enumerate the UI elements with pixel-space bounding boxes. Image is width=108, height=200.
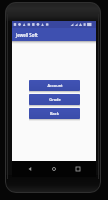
staticText: Back [50,111,59,116]
staticText: Jewell Soft [16,32,38,38]
button[interactable]: Grade [29,94,80,105]
button[interactable]: Home [48,163,60,175]
button[interactable]: Recent apps [72,163,84,175]
staticText: Grade [49,97,61,102]
button[interactable]: Back [29,108,80,119]
button[interactable]: Back [24,163,36,175]
button[interactable]: Account [29,80,80,91]
staticText: Account [47,83,63,88]
